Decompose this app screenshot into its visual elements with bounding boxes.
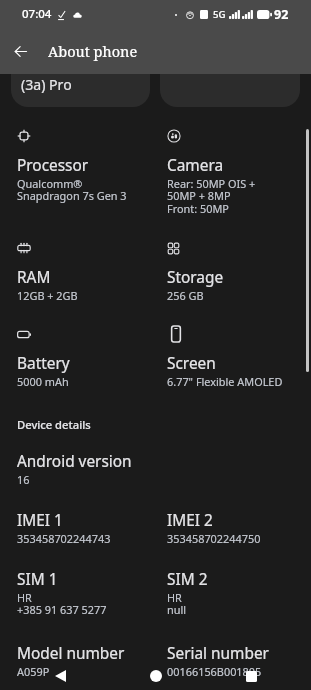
button[interactable]: RAM — [17, 241, 167, 303]
button[interactable]: Storage — [167, 241, 301, 303]
staticText: Processor — [17, 155, 89, 176]
staticText: HR null — [167, 590, 187, 617]
button[interactable]: Serial number — [167, 643, 301, 679]
button[interactable]: Battery — [17, 327, 167, 389]
staticText: 92 — [274, 6, 289, 23]
staticText: IMEI 1 — [17, 510, 63, 531]
button[interactable]: IMEI 2 — [167, 510, 301, 546]
button[interactable] — [160, 62, 300, 107]
button[interactable]: SIM 2 — [167, 569, 301, 617]
staticText: Qualcomm® Snapdragon 7s Gen 3 — [17, 176, 127, 203]
button[interactable]: Android version — [17, 451, 167, 487]
staticText: Serial number — [167, 643, 269, 664]
staticText: Device details — [17, 417, 91, 432]
staticText: 353458702244750 — [167, 531, 261, 546]
staticText: 256 GB — [167, 288, 204, 303]
staticText: Screen — [167, 353, 216, 374]
staticText: 353458702244743 — [17, 531, 111, 546]
staticText: Battery — [17, 353, 70, 374]
staticText: 07:04 — [22, 6, 52, 22]
staticText: Android version — [17, 451, 132, 472]
button[interactable]: SIM 1 — [17, 569, 167, 617]
staticText: About phone — [48, 41, 138, 61]
staticText: 00166156B001805 — [167, 664, 262, 679]
staticText: SIM 2 — [167, 569, 208, 590]
staticText: (3a) Pro — [21, 75, 72, 94]
staticText: 5000 mAh — [17, 374, 69, 389]
staticText: 16 — [17, 472, 30, 487]
staticText: HR +385 91 637 5277 — [17, 590, 107, 617]
button[interactable]: Processor — [17, 129, 167, 203]
staticText: 12GB + 2GB — [17, 288, 78, 303]
staticText: 5G — [213, 8, 226, 21]
staticText: SIM 1 — [17, 569, 58, 590]
button[interactable]: IMEI 1 — [17, 510, 167, 546]
button[interactable]: Model number — [17, 643, 167, 679]
button[interactable]: Screen — [167, 327, 301, 389]
staticText: A059P — [17, 664, 50, 679]
staticText: Rear: 50MP OIS + 50MP + 8MP Front: 50MP — [167, 176, 256, 216]
button[interactable]: Home — [145, 665, 167, 687]
staticText: Storage — [167, 267, 224, 288]
staticText: RAM — [17, 267, 51, 288]
staticText: Camera — [167, 155, 224, 176]
button[interactable]: Recent apps — [240, 665, 262, 687]
button[interactable]: Back — [4, 35, 36, 67]
button[interactable]: Back — [49, 665, 71, 687]
staticText: 6.77" Flexible AMOLED — [167, 374, 283, 389]
button[interactable]: Camera — [167, 129, 301, 216]
staticText: Model number — [17, 643, 125, 664]
button[interactable]: (3a) Pro — [11, 62, 150, 107]
staticText: IMEI 2 — [167, 510, 213, 531]
